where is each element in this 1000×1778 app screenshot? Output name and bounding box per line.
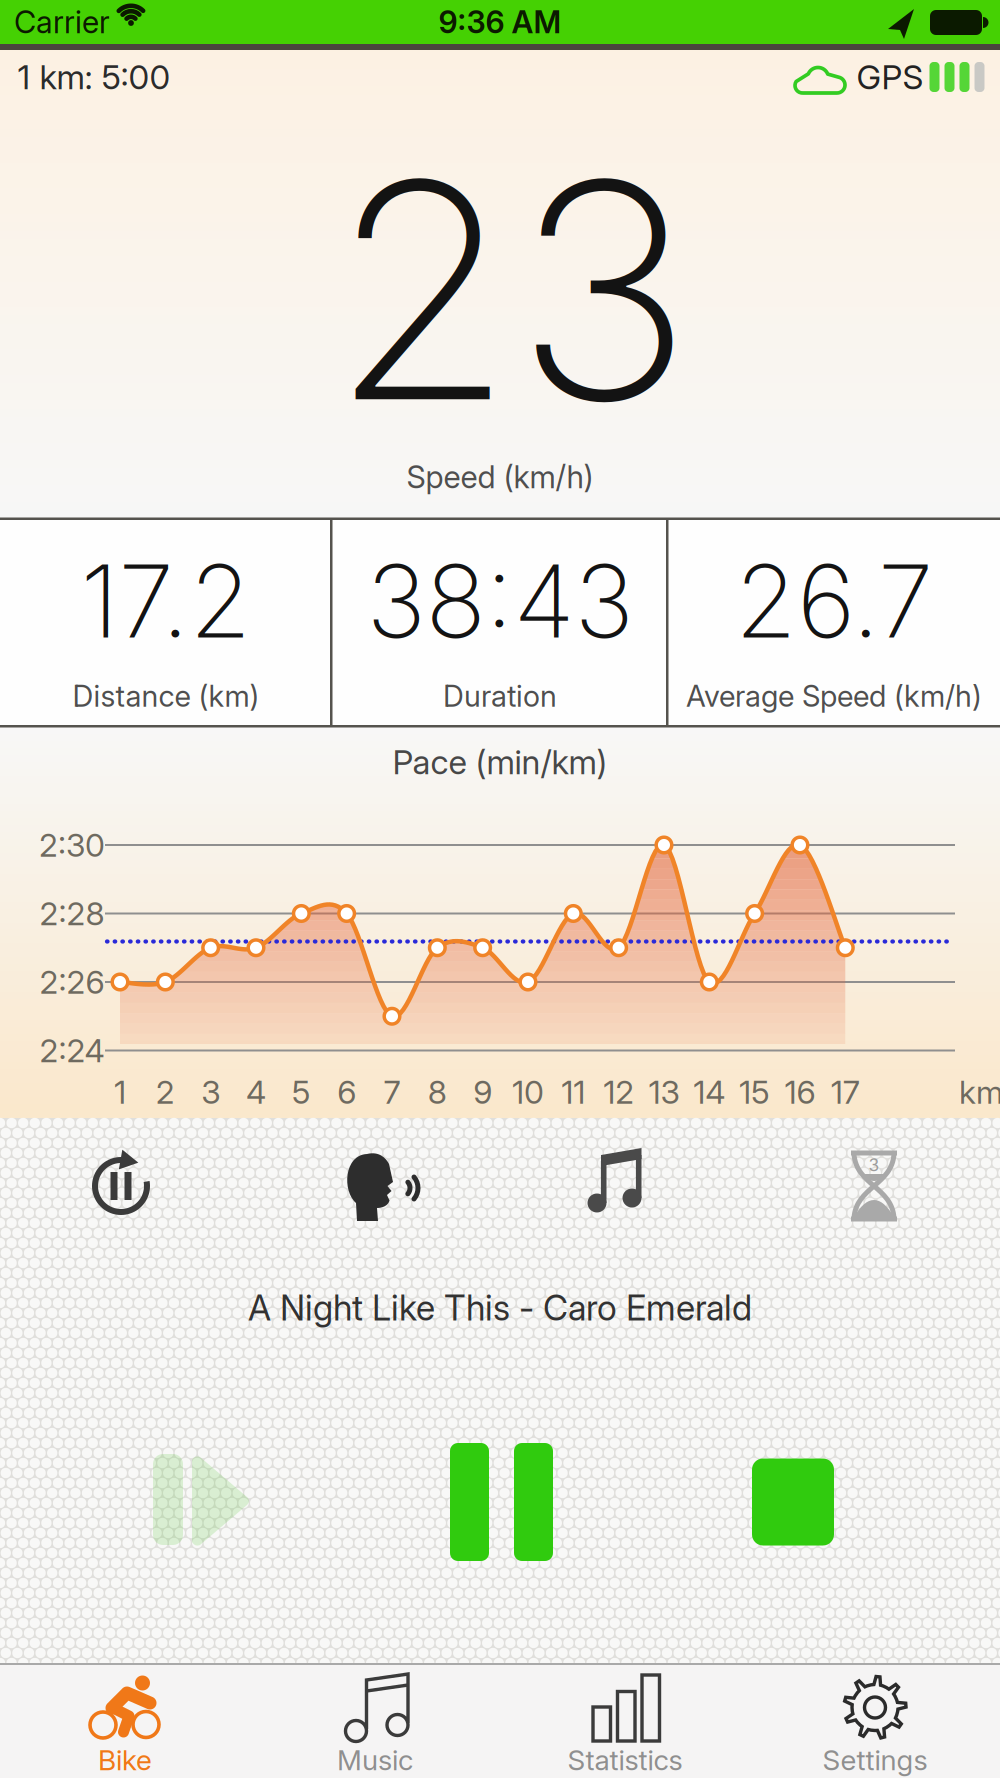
staticText: 8 [428,1073,447,1111]
button[interactable]: Voice feedback [327,1141,417,1231]
button[interactable]: Settings [750,1665,1000,1777]
staticText: 5 [292,1073,311,1111]
staticText: 3 [201,1073,220,1111]
staticText: Settings [822,1743,927,1776]
staticText: GPS [856,57,923,97]
button[interactable]: Stop [747,1455,839,1549]
staticText: 2:26 [39,963,104,1001]
staticText: 26.7 [735,542,933,660]
staticText: Average Speed (km/h) [686,679,982,713]
staticText: 23 [329,113,692,467]
staticText: Music [337,1743,413,1776]
staticText: 16 [784,1073,815,1111]
button[interactable]: Pause [446,1440,556,1564]
staticText: 15 [739,1073,770,1111]
staticText: Pace (min/km) [392,742,607,782]
staticText: 10 [512,1073,544,1111]
staticText: 9:36 AM [438,4,561,40]
staticText: 2 [156,1073,175,1111]
button[interactable]: Bike [0,1665,250,1777]
staticText: 11 [561,1073,585,1111]
staticText: Speed (km/h) [406,459,593,495]
staticText: Distance (km) [72,679,259,713]
button[interactable]: Statistics [500,1665,750,1777]
staticText: 17 [831,1073,860,1111]
button[interactable]: Countdown timer [829,1141,919,1231]
staticText: Statistics [567,1743,682,1776]
staticText: 38:43 [366,542,633,660]
staticText: 4 [246,1073,266,1111]
staticText: 13 [648,1073,679,1111]
staticText: 1 km: 5:00 [17,57,170,97]
staticText: 6 [337,1073,356,1111]
staticText: 2:28 [39,895,104,932]
button[interactable]: Music [578,1141,668,1231]
staticText: 7 [383,1073,400,1111]
staticText: Duration [443,679,557,713]
staticText: 3 [868,1155,879,1175]
button[interactable]: Music [250,1665,500,1777]
staticText: 2:24 [39,1032,104,1069]
button[interactable]: Auto pause [76,1141,166,1231]
staticText: km [959,1073,1000,1111]
staticText: 2:30 [39,826,105,864]
staticText: 12 [603,1073,634,1111]
staticText: Carrier [14,4,110,40]
staticText: 1 [114,1073,126,1111]
staticText: Bike [98,1743,152,1776]
staticText: 9 [473,1073,492,1111]
button[interactable]: Skip track [148,1448,252,1552]
staticText: A Night Like This - Caro Emerald [248,1288,752,1328]
staticText: 14 [693,1073,725,1111]
staticText: 17.2 [80,542,251,660]
